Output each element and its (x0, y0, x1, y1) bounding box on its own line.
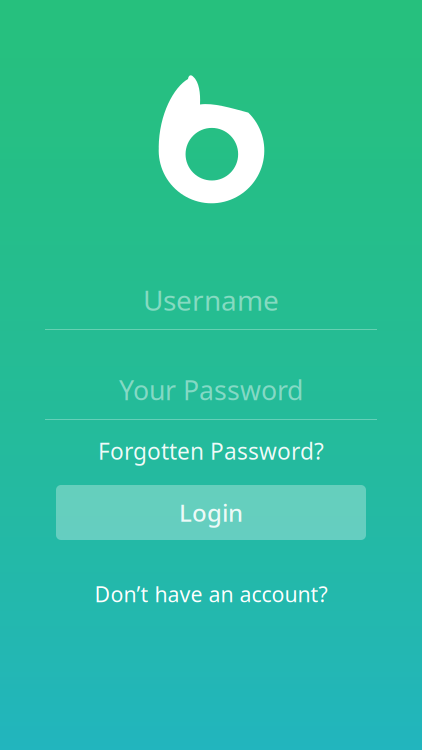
button[interactable]: Don’t have an account? (45, 577, 377, 611)
staticText: Your Password (119, 372, 303, 408)
button[interactable]: Login (56, 485, 366, 540)
staticText: Login (179, 497, 243, 528)
staticText: Don’t have an account? (94, 580, 327, 608)
staticText: Username (143, 281, 279, 319)
staticText: Forgotten Password? (98, 436, 324, 466)
button[interactable]: Forgotten Password? (45, 434, 377, 468)
